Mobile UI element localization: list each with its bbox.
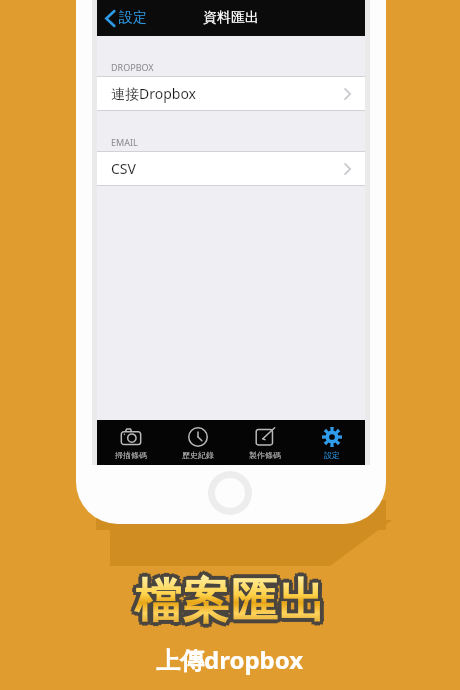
- staticText: 檔案匯出: [134, 568, 326, 627]
- staticText: 歷史紀錄: [182, 450, 214, 460]
- button[interactable]: 製作條碼: [231, 420, 298, 465]
- staticText: 檔案匯出: [130, 572, 322, 631]
- staticText: 檔案匯出: [134, 575, 326, 634]
- staticText: 檔案匯出: [131, 572, 323, 631]
- staticText: 檔案匯出: [134, 569, 326, 628]
- button[interactable]: 掃描條碼: [97, 420, 164, 465]
- staticText: 檔案匯出: [138, 572, 330, 631]
- button[interactable]: 設定: [97, 5, 155, 31]
- staticText: 資料匯出: [203, 9, 259, 27]
- staticText: 連接Dropbox: [111, 84, 197, 103]
- staticText: 製作條碼: [249, 450, 281, 460]
- staticText: 設定: [324, 450, 340, 460]
- staticText: 檔案匯出: [134, 576, 326, 635]
- staticText: 檔案匯出: [137, 569, 329, 628]
- button[interactable]: CSV: [97, 152, 365, 185]
- staticText: EMAIL: [111, 136, 138, 148]
- staticText: CSV: [111, 159, 136, 178]
- staticText: 掃描條碼: [115, 450, 147, 460]
- staticText: 設定: [119, 9, 147, 27]
- button[interactable]: 設定: [298, 420, 365, 465]
- staticText: 檔案匯出: [131, 575, 323, 634]
- button[interactable]: 歷史紀錄: [164, 420, 231, 465]
- staticText: 檔案匯出: [137, 572, 329, 631]
- staticText: 檔案匯出: [137, 575, 329, 634]
- staticText: 檔案匯出: [134, 572, 326, 631]
- button[interactable]: 連接Dropbox: [97, 77, 365, 110]
- staticText: DROPBOX: [111, 61, 154, 73]
- staticText: 檔案匯出: [131, 569, 323, 628]
- staticText: 上傳dropbox: [156, 643, 304, 676]
